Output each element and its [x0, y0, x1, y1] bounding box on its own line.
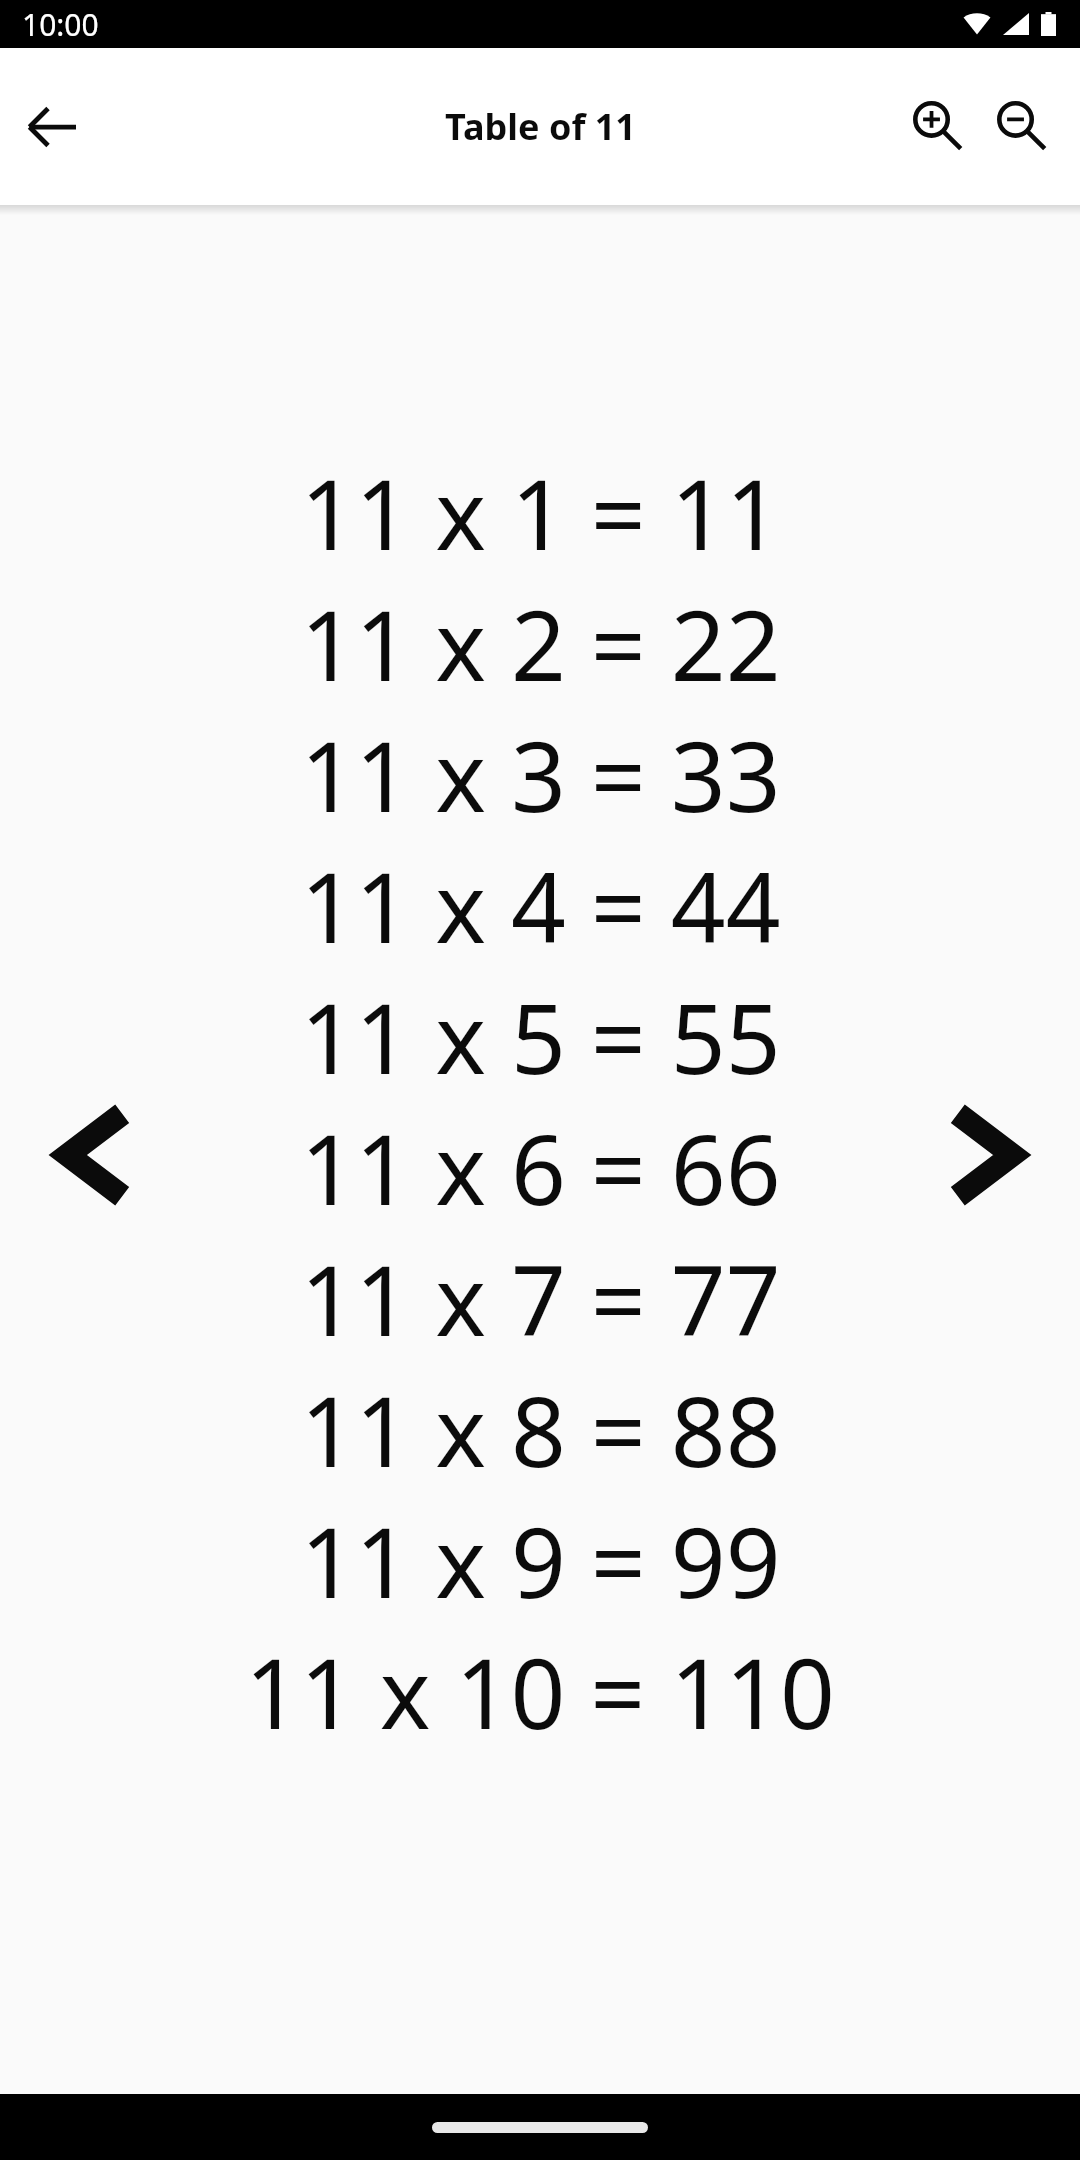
staticText: 11 x 8 = 88	[300, 1364, 781, 1495]
staticText: 11 x 4 = 44	[300, 840, 781, 971]
staticText: 11 x 9 = 99	[300, 1495, 781, 1626]
staticText: 11 x 5 = 55	[300, 971, 781, 1102]
button[interactable]: Next table	[940, 1085, 1040, 1225]
staticText: 11 x 6 = 66	[300, 1102, 781, 1233]
staticText: Table of 11	[445, 102, 636, 151]
staticText: 11 x 10 = 110	[245, 1626, 835, 1757]
button[interactable]: Zoom in	[896, 85, 980, 169]
staticText: 11 x 7 = 77	[300, 1233, 781, 1364]
staticText: 10:00	[22, 4, 99, 45]
button[interactable]: Previous table	[40, 1085, 140, 1225]
button[interactable]: Zoom out	[980, 85, 1064, 169]
staticText: 11 x 3 = 33	[300, 709, 781, 840]
staticText: 11 x 1 = 11	[300, 447, 781, 578]
button[interactable]: Back	[14, 89, 90, 165]
staticText: 11 x 2 = 22	[300, 578, 781, 709]
